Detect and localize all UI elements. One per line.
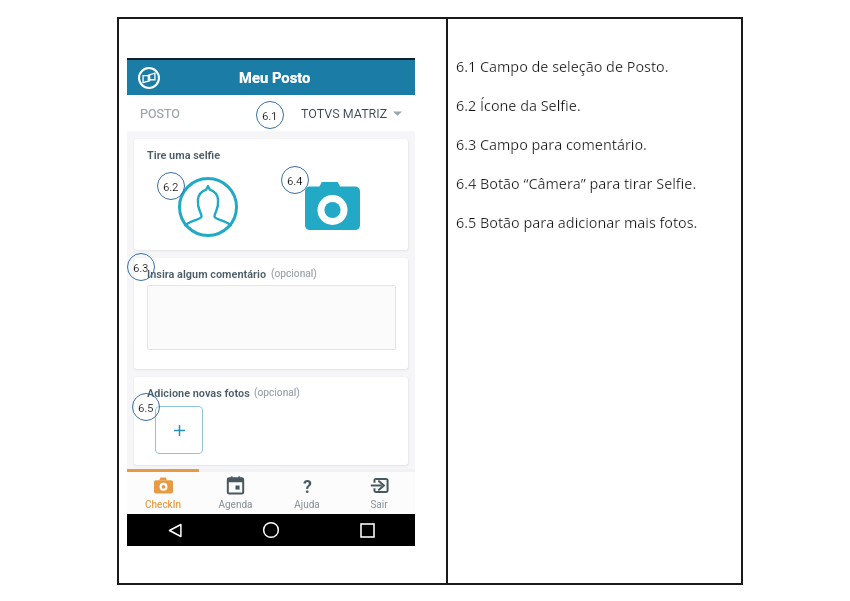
- staticText: 6.4 Botão “Câmera” para tirar Selfie.: [456, 174, 697, 194]
- button[interactable]: Back: [127, 514, 223, 546]
- staticText: 6.1: [262, 109, 278, 122]
- staticText: 6.3 Campo para comentário.: [456, 135, 647, 155]
- staticText: 6.5: [138, 401, 154, 414]
- staticText: 6.4: [287, 174, 303, 187]
- button[interactable]: Agenda: [199, 472, 271, 514]
- button[interactable]: POSTO: [127, 95, 415, 131]
- button[interactable]: Selfie: [178, 177, 238, 237]
- button[interactable]: [147, 285, 396, 350]
- button[interactable]: Câmera: [302, 179, 363, 233]
- staticText: 6.2: [163, 180, 179, 193]
- staticText: POSTO: [140, 106, 180, 121]
- staticText: Sair: [370, 499, 388, 511]
- staticText: TOTVS MATRIZ: [301, 106, 388, 121]
- staticText: CheckIn: [145, 499, 181, 511]
- button[interactable]: Adicionar foto: [155, 406, 203, 454]
- button[interactable]: Menu: [138, 67, 160, 89]
- button[interactable]: ?: [271, 472, 343, 514]
- staticText: 6.5 Botão para adicionar mais fotos.: [456, 213, 698, 233]
- button[interactable]: CheckIn: [127, 472, 199, 514]
- staticText: Meu Posto: [239, 69, 311, 86]
- button[interactable]: Recents: [319, 514, 415, 546]
- staticText: (opcional): [254, 387, 300, 399]
- staticText: 6.2 Ícone da Selfie.: [456, 96, 581, 116]
- button[interactable]: Home: [223, 514, 319, 546]
- staticText: Agenda: [218, 499, 253, 511]
- staticText: 6.3: [133, 261, 149, 274]
- staticText: Ajuda: [294, 499, 320, 511]
- button[interactable]: Sair: [343, 472, 415, 514]
- staticText: 6.1 Campo de seleção de Posto.: [456, 57, 669, 77]
- staticText: Adicione novas fotos: [147, 387, 250, 400]
- staticText: Tire uma selfie: [147, 149, 221, 162]
- staticText: Insira algum comentário: [147, 268, 267, 281]
- staticText: ?: [303, 476, 312, 495]
- staticText: (opcional): [271, 268, 317, 280]
